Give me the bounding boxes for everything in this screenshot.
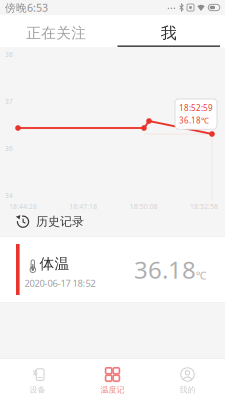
- staticText: 我: [161, 23, 177, 43]
- staticText: ℃: [196, 268, 207, 282]
- staticText: 设备: [29, 385, 45, 395]
- staticText: 18:50:08: [130, 202, 158, 211]
- staticText: ···: [167, 0, 176, 15]
- staticText: 18:44:28: [9, 202, 37, 211]
- staticText: 傍晚6:53: [5, 0, 48, 15]
- button[interactable]: 我: [112, 15, 225, 47]
- staticText: 18:52:59: [179, 102, 213, 113]
- staticText: 36.18℃: [179, 115, 209, 126]
- staticText: 正在关注: [26, 24, 86, 42]
- staticText: 温度记: [100, 385, 124, 395]
- staticText: 18:52:58: [190, 202, 218, 211]
- button[interactable]: 设备: [0, 359, 75, 400]
- staticText: 37: [5, 97, 13, 106]
- staticText: 2020-06-17 18:52: [25, 277, 96, 289]
- button[interactable]: 体温: [0, 236, 225, 303]
- button[interactable]: 温度记: [75, 359, 150, 400]
- staticText: 历史记录: [36, 214, 84, 229]
- staticText: 36.18: [134, 254, 196, 285]
- staticText: 34: [5, 191, 13, 200]
- button[interactable]: 历史记录: [0, 207, 225, 236]
- staticText: 36: [5, 144, 13, 153]
- staticText: 我的: [179, 385, 195, 395]
- staticText: 体温: [40, 255, 70, 273]
- staticText: 18:47:18: [69, 202, 97, 211]
- staticText: 38: [5, 50, 13, 59]
- button[interactable]: 正在关注: [0, 15, 112, 47]
- button[interactable]: 我的: [150, 359, 225, 400]
